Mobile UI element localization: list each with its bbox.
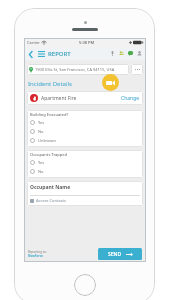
staticText: Access Contacts <box>36 198 66 203</box>
button[interactable]: Yes <box>30 158 140 167</box>
staticText: 1900 Ellis St, San Francisco, CA 94115, … <box>35 67 115 72</box>
staticText: Change <box>121 95 140 102</box>
staticText: No <box>38 129 44 134</box>
button[interactable]: Yes <box>30 118 140 127</box>
staticText: No <box>38 169 44 174</box>
staticText: Yes <box>38 160 45 165</box>
button[interactable]: Occupant Name <box>27 181 143 206</box>
staticText: NowForce <box>28 254 43 258</box>
staticText: Apartment Fire <box>41 95 77 102</box>
button[interactable]: Record video <box>102 74 119 91</box>
staticText: Incident Details <box>28 80 72 88</box>
staticText: Building Evacuated? <box>30 112 69 117</box>
staticText: Yes <box>38 120 45 125</box>
button[interactable]: Responders <box>118 50 125 57</box>
staticText: Reporting to: <box>28 250 47 254</box>
button[interactable]: Home <box>74 274 96 296</box>
button[interactable]: 1900 Ellis St, San Francisco, CA 94115, … <box>27 64 129 75</box>
button[interactable]: More options <box>131 64 143 75</box>
button[interactable]: Back <box>27 50 35 58</box>
button[interactable]: Menu <box>36 49 46 59</box>
button[interactable]: Apartment Fire <box>27 91 143 105</box>
button[interactable]: No <box>30 127 140 136</box>
button[interactable]: SEND <box>98 248 142 260</box>
button[interactable]: Messages <box>127 50 134 57</box>
staticText: 5:08 PM <box>79 40 95 45</box>
staticText: REPORT <box>48 50 71 58</box>
staticText: Carrier <box>27 40 41 45</box>
staticText: Unknown <box>38 138 56 143</box>
button[interactable]: No <box>30 167 140 176</box>
button[interactable]: Audio <box>109 50 116 57</box>
staticText: Occupant Name <box>30 184 71 191</box>
button[interactable]: Profile <box>136 50 143 57</box>
staticText: SEND <box>108 251 122 258</box>
staticText: Occupants Trapped <box>30 152 68 157</box>
button[interactable]: Unknown <box>30 136 140 145</box>
